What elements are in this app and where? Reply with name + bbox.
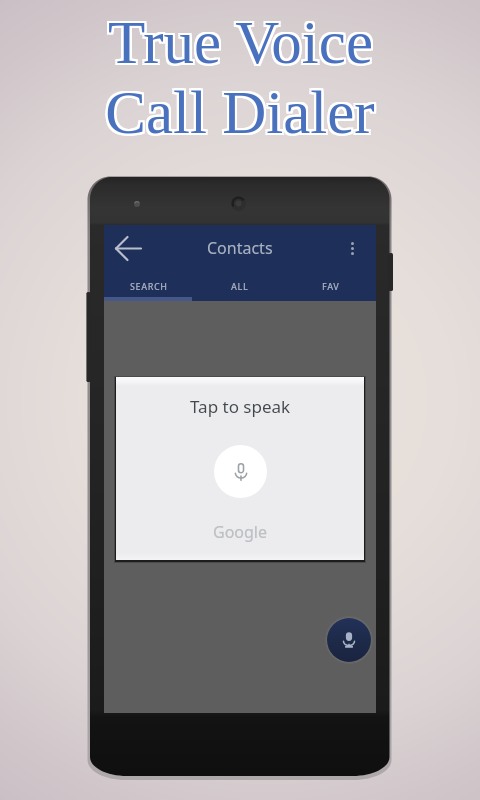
staticText: Call Dialer <box>103 81 373 149</box>
staticText: ALL <box>231 280 249 292</box>
staticText: True Voice <box>110 9 375 77</box>
staticText: True Voice <box>106 7 371 75</box>
staticText: Contacts <box>207 237 273 259</box>
staticText: True Voice <box>106 11 371 79</box>
staticText: Google <box>213 521 268 543</box>
staticText: Call Dialer <box>105 79 375 147</box>
staticText: Call Dialer <box>103 77 373 145</box>
staticText: SEARCH <box>130 280 168 292</box>
staticText: True Voice <box>110 11 375 79</box>
staticText: Call Dialer <box>107 77 377 145</box>
staticText: True Voice <box>106 9 371 77</box>
staticText: Tap to speak <box>190 395 291 418</box>
button[interactable]: SEARCH <box>104 271 194 301</box>
staticText: FAV <box>322 280 340 292</box>
staticText: Call Dialer <box>107 79 377 147</box>
button[interactable]: Microphone <box>214 445 267 498</box>
staticText: Call Dialer <box>105 81 375 149</box>
button[interactable]: More options <box>340 236 364 260</box>
staticText: True Voice <box>110 7 375 75</box>
button[interactable]: Back <box>108 228 148 268</box>
staticText: True Voice <box>108 9 373 77</box>
staticText: True Voice <box>108 11 373 79</box>
staticText: True Voice <box>108 7 373 75</box>
button[interactable]: ALL <box>194 271 285 301</box>
button[interactable]: FAV <box>285 271 376 301</box>
button[interactable]: Voice dial <box>327 618 371 662</box>
staticText: Call Dialer <box>107 81 377 149</box>
staticText: Call Dialer <box>103 79 373 147</box>
staticText: Call Dialer <box>105 77 375 145</box>
